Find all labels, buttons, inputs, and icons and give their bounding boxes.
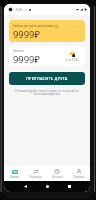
button[interactable]: Back — [18, 181, 32, 192]
button[interactable]: Сейчас доступно для вывода — [9, 20, 85, 42]
button[interactable]: ПРИГЛАСИТЬ ДРУГА — [9, 72, 85, 85]
staticText: Переводы — [29, 175, 42, 179]
staticText: Заказы — [10, 175, 19, 179]
other: Orders — [12, 170, 18, 174]
button[interactable]: Profile — [68, 166, 90, 181]
staticText: Рекомендуйте свой сервис и получайте воз… — [11, 88, 83, 96]
staticText: Чаевые — [13, 49, 24, 53]
staticText: Сейчас доступно для вывода — [13, 24, 54, 28]
other: Profile — [76, 169, 82, 174]
button[interactable]: Чаевые — [9, 46, 85, 66]
button[interactable]: Recents — [62, 181, 76, 192]
staticText: в 19:40 — [69, 58, 79, 62]
button[interactable]: History — [46, 166, 68, 181]
staticText: История — [52, 175, 63, 179]
button[interactable]: Home — [40, 181, 54, 192]
staticText: 9999₽ — [13, 28, 40, 41]
staticText: 9:41 — [16, 8, 23, 12]
button[interactable]: Transfers — [25, 166, 46, 181]
staticText: Профиль — [73, 175, 85, 179]
staticText: ПРИГЛАСИТЬ ДРУГА — [26, 76, 68, 81]
other: Transfers — [33, 169, 39, 174]
button[interactable]: Orders — [4, 166, 25, 181]
staticText: 9999₽ — [13, 53, 40, 66]
other: History — [54, 169, 60, 174]
